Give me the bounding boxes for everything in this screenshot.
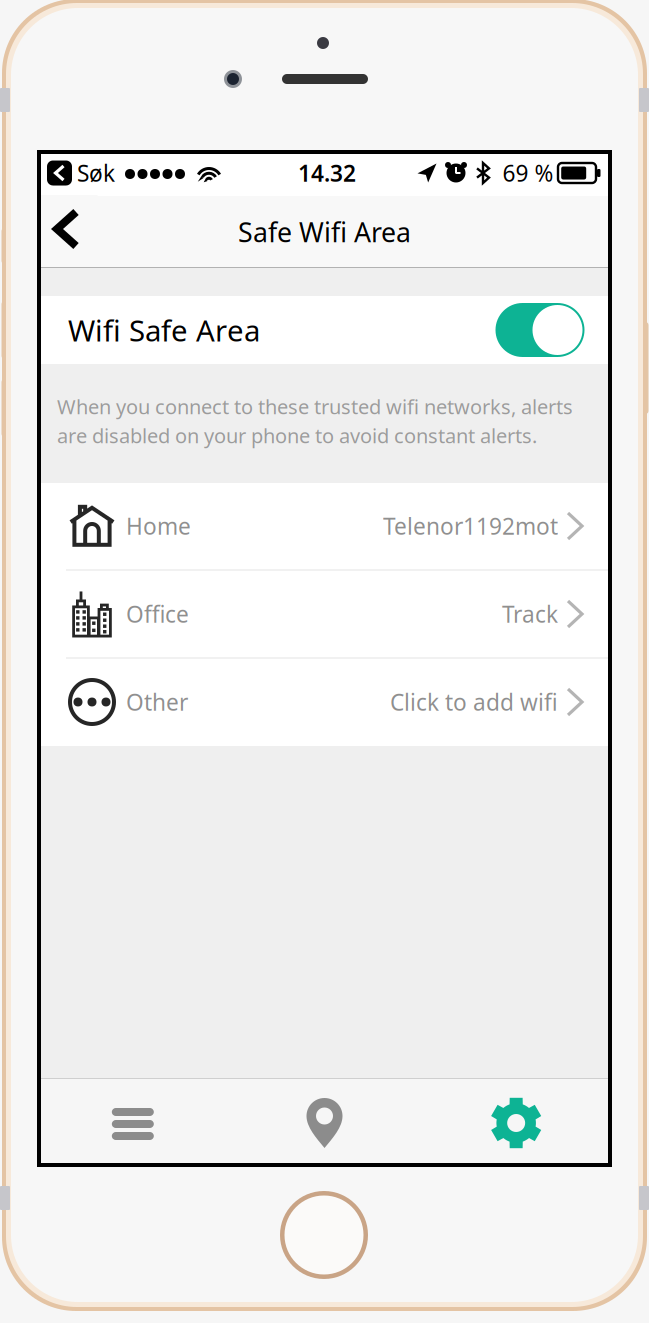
button[interactable]: Wifi Safe Area toggle, on: [495, 303, 584, 357]
staticText: Track: [502, 599, 558, 629]
button[interactable]: Home: [37, 483, 612, 570]
button[interactable]: Back: [35, 195, 97, 263]
staticText: 14.32: [298, 158, 356, 188]
staticText: Telenor1192mot: [383, 511, 558, 541]
staticText: Søk: [77, 158, 115, 188]
staticText: are disabled on your phone to avoid cons…: [57, 422, 537, 449]
button[interactable]: Menu: [37, 1079, 229, 1167]
staticText: 69 %: [502, 158, 553, 188]
button[interactable]: Other: [37, 659, 612, 746]
staticText: Click to add wifi: [390, 687, 558, 717]
button[interactable]: Settings: [420, 1079, 612, 1167]
staticText: Other: [126, 687, 188, 717]
button[interactable]: Office: [37, 571, 612, 658]
staticText: Home: [126, 511, 191, 541]
button[interactable]: Map: [229, 1079, 420, 1167]
staticText: When you connect to these trusted wifi n…: [57, 393, 573, 420]
staticText: Office: [126, 599, 189, 629]
staticText: Wifi Safe Area: [68, 310, 260, 349]
staticText: Safe Wifi Area: [238, 214, 411, 250]
button[interactable]: Back to Søk: [47, 157, 117, 189]
